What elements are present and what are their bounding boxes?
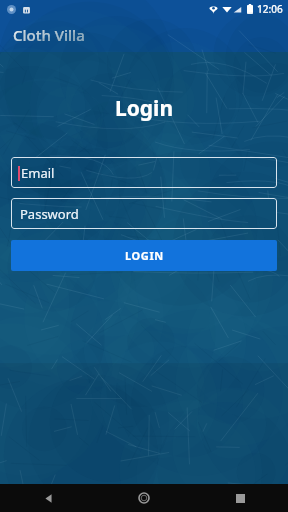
button[interactable]: LOGIN bbox=[11, 240, 277, 271]
button[interactable]: Home bbox=[96, 484, 192, 512]
button[interactable]: Email bbox=[11, 157, 277, 188]
button[interactable]: Back bbox=[0, 484, 96, 512]
staticText: 12:06 bbox=[257, 2, 283, 16]
button[interactable]: Password bbox=[11, 198, 277, 229]
staticText: Password bbox=[20, 205, 79, 223]
staticText: Email bbox=[21, 164, 55, 182]
button[interactable]: Recent apps bbox=[192, 484, 288, 512]
staticText: Login bbox=[0, 94, 288, 123]
staticText: LOGIN bbox=[125, 248, 164, 263]
staticText: Cloth Villa bbox=[13, 25, 85, 45]
